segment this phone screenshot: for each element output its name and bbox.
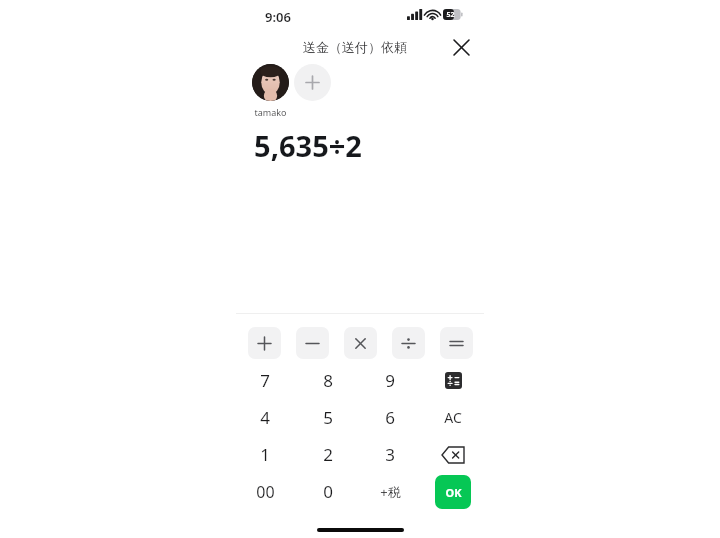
button[interactable]: 9 bbox=[359, 362, 421, 399]
button[interactable]: 6 bbox=[359, 399, 421, 436]
button[interactable]: Delete bbox=[422, 436, 484, 473]
staticText: OK bbox=[445, 485, 462, 500]
staticText: 3 bbox=[385, 443, 395, 466]
button[interactable]: minus bbox=[296, 327, 329, 359]
staticText: 0 bbox=[323, 480, 333, 503]
staticText: 5,635÷2 bbox=[254, 126, 362, 165]
button[interactable]: 0 bbox=[297, 473, 359, 510]
button[interactable]: Calculator bbox=[422, 362, 484, 399]
button[interactable]: plus bbox=[248, 327, 281, 359]
staticText: 7 bbox=[260, 369, 270, 392]
button[interactable]: 8 bbox=[297, 362, 359, 399]
button[interactable]: OK bbox=[435, 475, 471, 509]
button[interactable]: 1 bbox=[234, 436, 296, 473]
button[interactable] bbox=[252, 64, 289, 101]
button[interactable]: 2 bbox=[297, 436, 359, 473]
staticText: 00 bbox=[256, 481, 275, 503]
staticText: 8 bbox=[323, 369, 333, 392]
button[interactable]: AC bbox=[422, 399, 484, 436]
button[interactable]: +税 bbox=[359, 473, 421, 510]
staticText: 6 bbox=[385, 406, 395, 429]
button[interactable]: Add recipient bbox=[294, 64, 331, 101]
staticText: 9:06 bbox=[265, 8, 291, 26]
staticText: AC bbox=[444, 408, 462, 427]
button[interactable]: 00 bbox=[234, 473, 296, 510]
button[interactable]: div bbox=[392, 327, 425, 359]
staticText: 2 bbox=[323, 443, 333, 466]
staticText: tamako bbox=[254, 106, 287, 118]
staticText: 送金（送付）依頼 bbox=[303, 39, 407, 55]
button[interactable]: 4 bbox=[234, 399, 296, 436]
button[interactable]: 5 bbox=[297, 399, 359, 436]
staticText: 1 bbox=[260, 443, 270, 466]
staticText: +税 bbox=[380, 483, 401, 501]
staticText: 5 bbox=[323, 406, 333, 429]
staticText: 4 bbox=[260, 406, 270, 429]
staticText: 52 bbox=[446, 10, 455, 20]
staticText: 9 bbox=[385, 369, 395, 392]
button[interactable]: 3 bbox=[359, 436, 421, 473]
button[interactable]: eq bbox=[440, 327, 473, 359]
button[interactable]: Close bbox=[444, 30, 478, 64]
button[interactable]: times bbox=[344, 327, 377, 359]
button[interactable]: 7 bbox=[234, 362, 296, 399]
